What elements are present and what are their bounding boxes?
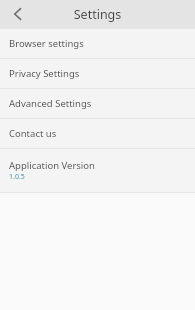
button[interactable]: Privacy Settings — [0, 59, 195, 88]
staticText: Privacy Settings — [9, 67, 80, 80]
staticText: Browser settings — [9, 37, 84, 50]
staticText: Application Version — [9, 159, 95, 172]
button[interactable]: Browser settings — [0, 29, 195, 58]
staticText: Settings — [0, 6, 195, 23]
button[interactable]: Advanced Settings — [0, 89, 195, 118]
button[interactable]: Contact us — [0, 119, 195, 148]
button[interactable]: Back — [6, 2, 30, 26]
staticText: Contact us — [9, 127, 57, 140]
staticText: 1.0.5 — [9, 172, 25, 182]
staticText: Advanced Settings — [9, 97, 92, 110]
button[interactable]: Application Version — [0, 149, 195, 192]
